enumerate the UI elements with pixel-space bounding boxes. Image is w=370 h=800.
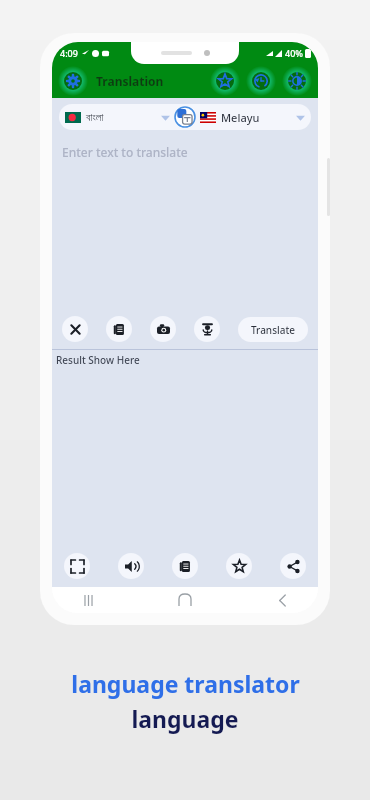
button[interactable]: বাংলা: [65, 104, 174, 130]
staticText: Melayu: [221, 110, 260, 125]
button[interactable]: Theme: [282, 66, 312, 96]
button[interactable]: Recents: [78, 590, 98, 610]
button[interactable]: Voice input: [194, 316, 220, 342]
button[interactable]: Clear: [62, 316, 88, 342]
button[interactable]: Camera: [150, 316, 176, 342]
button[interactable]: Copy: [172, 553, 198, 579]
button[interactable]: Favorites: [210, 66, 240, 96]
button[interactable]: Fullscreen: [64, 553, 90, 579]
button[interactable]: Share: [280, 553, 306, 579]
button[interactable]: Favorite: [226, 553, 252, 579]
staticText: language: [131, 703, 239, 734]
button[interactable]: History: [246, 66, 276, 96]
staticText: Translation: [96, 73, 210, 89]
button[interactable]: Translate: [238, 317, 308, 342]
button[interactable]: Settings: [58, 66, 88, 96]
staticText: Enter text to translate: [62, 144, 188, 160]
staticText: language translator: [71, 668, 300, 699]
button[interactable]: Speak: [118, 553, 144, 579]
button[interactable]: Paste: [106, 316, 132, 342]
staticText: 40%: [285, 47, 303, 59]
button[interactable]: Melayu: [196, 104, 305, 130]
staticText: 4:09: [60, 47, 78, 59]
button[interactable]: Back: [272, 590, 292, 610]
button[interactable]: Home: [175, 590, 195, 610]
staticText: Translate: [251, 323, 295, 337]
staticText: Result Show Here: [56, 353, 140, 367]
button[interactable]: Swap languages: [174, 106, 196, 128]
staticText: বাংলা: [86, 112, 104, 123]
